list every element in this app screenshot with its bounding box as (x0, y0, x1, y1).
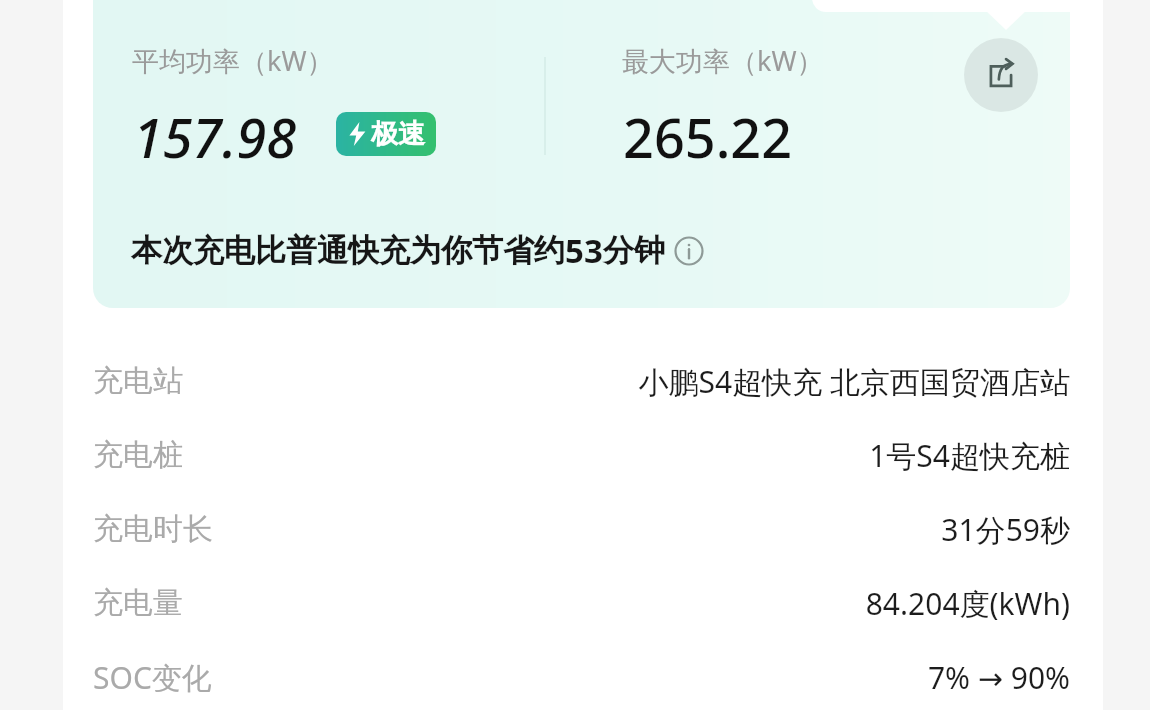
staticText: 小鹏S4超快充 北京西国贸酒店站 (638, 361, 1070, 402)
staticText: 充电量 (93, 584, 183, 622)
staticText: 充电桩 (93, 436, 183, 474)
staticText: 53 (565, 228, 603, 273)
staticText: 充电时长 (93, 510, 213, 548)
staticText: SOC变化 (93, 657, 212, 698)
button[interactable]: 极速 (347, 112, 425, 156)
button[interactable]: 充电时长 (93, 492, 1070, 566)
staticText: 极速 (371, 117, 425, 151)
staticText: 84.204度(kWh) (865, 583, 1070, 624)
staticText: 充电站 (93, 362, 183, 400)
button[interactable]: 平均功率（kW） (93, 0, 1070, 308)
button[interactable]: 充电站 (93, 344, 1070, 418)
staticText: 31分59秒 (941, 509, 1070, 550)
staticText: 分钟 (603, 231, 665, 270)
staticText: 7% → 90% (927, 657, 1070, 698)
staticText: 本次充电比普通快充为你节省约 (131, 231, 565, 270)
staticText: 最大功率（kW） (622, 42, 824, 79)
staticText: 1号S4超快充桩 (869, 435, 1070, 476)
button[interactable]: Info (674, 236, 704, 266)
staticText: 265.22 (623, 100, 793, 174)
staticText: 157.98 (133, 100, 297, 174)
button[interactable]: 充电桩 (93, 418, 1070, 492)
staticText: 平均功率（kW） (132, 42, 334, 79)
button[interactable]: 充电量 (93, 566, 1070, 640)
button[interactable]: Share (964, 38, 1038, 112)
button[interactable]: SOC变化 (93, 640, 1070, 710)
